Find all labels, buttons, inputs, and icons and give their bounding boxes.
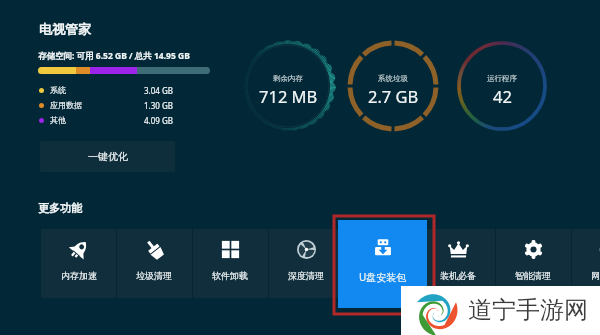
staticText: 42 — [493, 85, 512, 107]
staticText: 网络加速 — [591, 270, 600, 281]
button[interactable]: 一键优化 — [40, 141, 175, 172]
button[interactable]: 软件卸载 — [192, 229, 268, 298]
button[interactable]: 网络加速 — [571, 229, 600, 298]
button[interactable]: 深度清理 — [268, 229, 344, 298]
staticText: 系统 — [50, 85, 66, 95]
staticText: 垃圾清理 — [136, 270, 172, 281]
staticText: 更多功能 — [38, 201, 82, 215]
staticText: 剩余内存 — [273, 74, 303, 83]
button[interactable]: U盘安装包 — [338, 220, 427, 308]
staticText: 存储空间: 可用 6.52 GB / 总共 14.95 GB — [38, 50, 190, 62]
staticText: 应用数据 — [50, 100, 82, 110]
staticText: 道宁手游网 — [468, 295, 588, 325]
button[interactable]: 智能清理 — [495, 229, 571, 298]
button[interactable]: 内存加速 — [41, 229, 117, 298]
staticText: 内存加速 — [61, 270, 97, 281]
button[interactable]: 装机必备 — [420, 229, 496, 298]
staticText: 其他 — [50, 115, 66, 125]
staticText: 712 MB — [259, 85, 318, 107]
staticText: 装机必备 — [440, 270, 476, 281]
staticText: 智能清理 — [515, 270, 551, 281]
staticText: 深度清理 — [288, 270, 324, 281]
staticText: 2.7 GB — [368, 85, 419, 107]
staticText: 4.09 GB — [144, 115, 173, 126]
staticText: 1.30 GB — [144, 100, 173, 111]
button[interactable]: 垃圾清理 — [116, 229, 192, 298]
staticText: 3.04 GB — [144, 85, 173, 96]
staticText: 软件卸载 — [212, 270, 248, 281]
staticText: U盘安装包 — [359, 270, 407, 284]
staticText: 一键优化 — [88, 150, 128, 163]
staticText: 系统垃圾 — [378, 74, 408, 83]
staticText: 运行程序 — [487, 74, 517, 83]
staticText: 电视管家 — [39, 21, 91, 37]
